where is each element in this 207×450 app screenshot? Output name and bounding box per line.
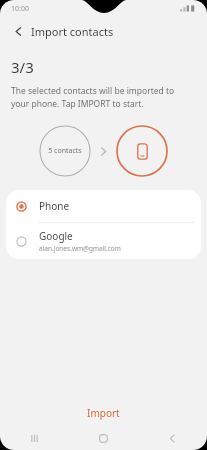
button[interactable]: Recent apps bbox=[0, 426, 69, 450]
staticText: 3/3 bbox=[11, 57, 34, 77]
staticText: 10:00 bbox=[11, 4, 29, 14]
staticText: The selected contacts will be imported t… bbox=[11, 85, 175, 110]
staticText: Phone bbox=[39, 199, 70, 213]
button[interactable]: Phone bbox=[6, 190, 201, 222]
button[interactable]: Import bbox=[0, 400, 207, 426]
staticText: Import bbox=[87, 406, 120, 420]
staticText: alan.jones.wm@gmail.com bbox=[39, 244, 121, 253]
button[interactable]: Google bbox=[6, 223, 201, 259]
button[interactable]: Navigate up bbox=[8, 21, 28, 41]
staticText: 5 contacts bbox=[48, 146, 82, 156]
button[interactable]: Back bbox=[138, 426, 207, 450]
staticText: Import contacts bbox=[31, 24, 114, 39]
button[interactable]: Home bbox=[69, 426, 138, 450]
staticText: Google bbox=[39, 229, 73, 243]
